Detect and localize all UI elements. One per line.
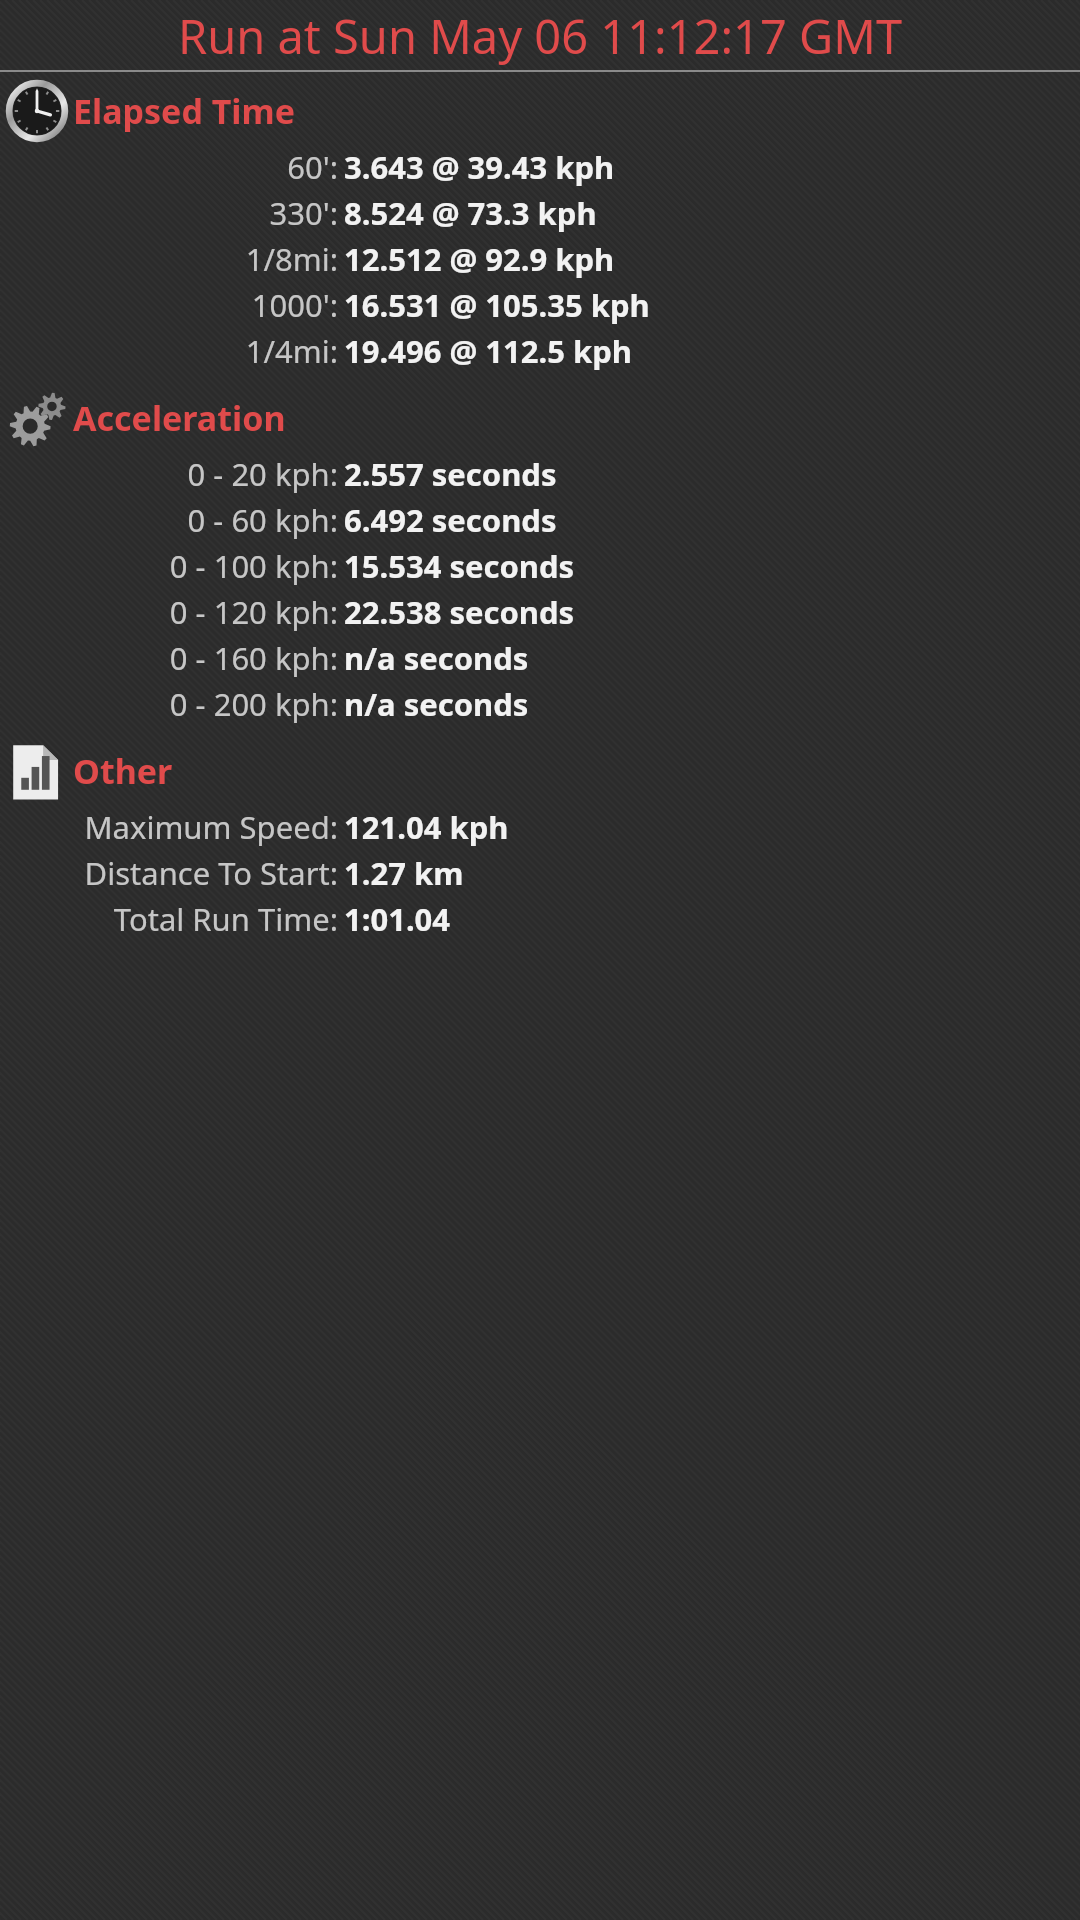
button[interactable]: 1/8mi:	[0, 238, 1080, 284]
staticText: Acceleration	[73, 395, 286, 441]
other: Elapsed time	[3, 77, 71, 145]
staticText: 1/8mi:	[0, 238, 338, 280]
staticText: n/a seconds	[344, 683, 529, 725]
staticText: 0 - 100 kph:	[0, 545, 338, 587]
staticText: 0 - 60 kph:	[0, 499, 338, 541]
staticText: Distance To Start:	[0, 852, 338, 894]
button[interactable]: 1000':	[0, 284, 1080, 330]
staticText: 0 - 120 kph:	[0, 591, 338, 633]
staticText: 2.557 seconds	[344, 453, 557, 495]
button[interactable]: Maximum Speed:	[0, 806, 1080, 852]
staticText: 121.04 kph	[344, 806, 509, 848]
staticText: 3.643 @ 39.43 kph	[344, 146, 615, 188]
staticText: 60':	[0, 146, 338, 188]
button[interactable]: Total Run Time:	[0, 898, 1080, 944]
staticText: 1000':	[0, 284, 338, 326]
other: Acceleration	[3, 384, 71, 452]
button[interactable]: 1/4mi:	[0, 330, 1080, 376]
staticText: 0 - 160 kph:	[0, 637, 338, 679]
staticText: 8.524 @ 73.3 kph	[344, 192, 597, 234]
staticText: Elapsed Time	[73, 88, 295, 134]
staticText: 1/4mi:	[0, 330, 338, 372]
staticText: 22.538 seconds	[344, 591, 575, 633]
button[interactable]: 0 - 200 kph:	[0, 683, 1080, 729]
other: Other	[3, 737, 71, 805]
button[interactable]: 0 - 60 kph:	[0, 499, 1080, 545]
button[interactable]: 0 - 160 kph:	[0, 637, 1080, 683]
button[interactable]: 60':	[0, 146, 1080, 192]
staticText: 1:01.04	[344, 898, 451, 940]
staticText: 1.27 km	[344, 852, 464, 894]
button[interactable]: Other	[0, 735, 1080, 806]
staticText: Maximum Speed:	[0, 806, 338, 848]
staticText: Run at Sun May 06 11:12:17 GMT	[8, 4, 1072, 68]
button[interactable]: 330':	[0, 192, 1080, 238]
button[interactable]: Distance To Start:	[0, 852, 1080, 898]
staticText: 0 - 200 kph:	[0, 683, 338, 725]
button[interactable]: Acceleration	[0, 382, 1080, 453]
staticText: Total Run Time:	[0, 898, 338, 940]
button[interactable]: 0 - 120 kph:	[0, 591, 1080, 637]
staticText: Other	[73, 748, 173, 794]
button[interactable]: 0 - 20 kph:	[0, 453, 1080, 499]
staticText: 330':	[0, 192, 338, 234]
staticText: 16.531 @ 105.35 kph	[344, 284, 650, 326]
staticText: 0 - 20 kph:	[0, 453, 338, 495]
staticText: 15.534 seconds	[344, 545, 575, 587]
staticText: 6.492 seconds	[344, 499, 557, 541]
staticText: n/a seconds	[344, 637, 529, 679]
button[interactable]: Elapsed time	[0, 75, 1080, 146]
staticText: 12.512 @ 92.9 kph	[344, 238, 615, 280]
staticText: 19.496 @ 112.5 kph	[344, 330, 632, 372]
button[interactable]: 0 - 100 kph:	[0, 545, 1080, 591]
